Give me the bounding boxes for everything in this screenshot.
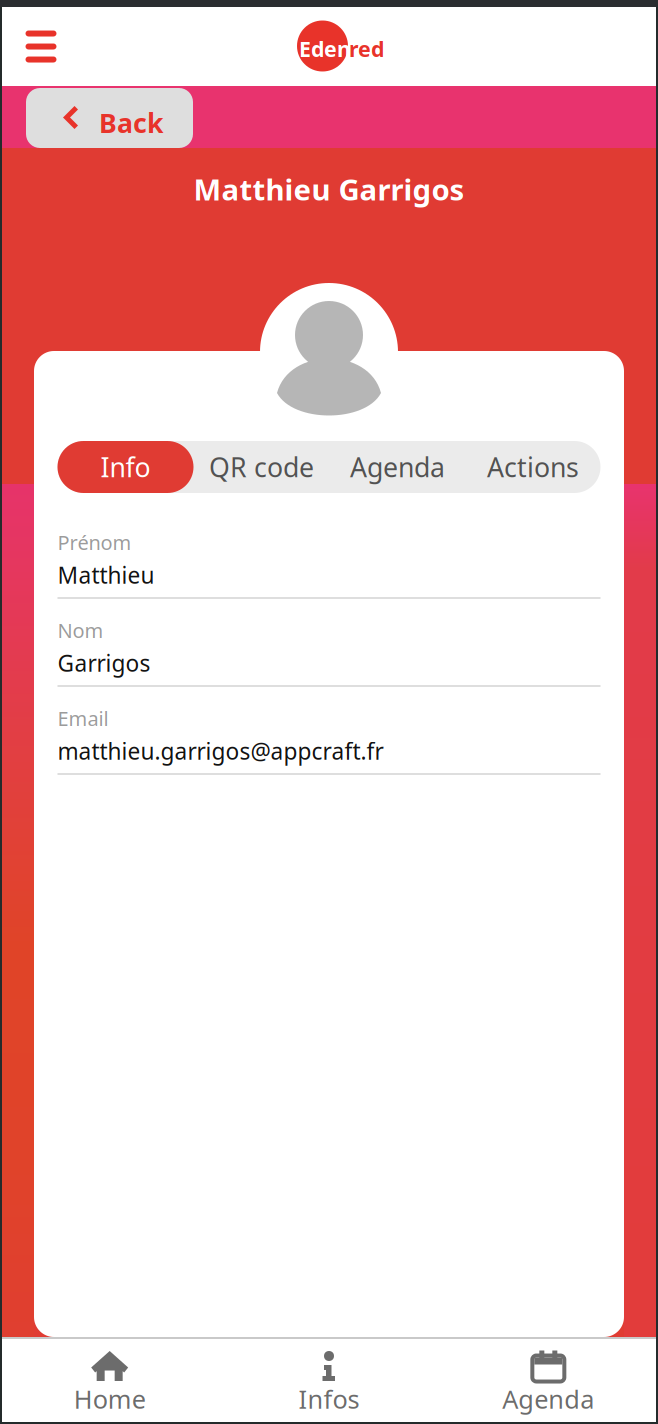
staticText: Matthieu Garrigos xyxy=(193,169,464,208)
staticText: Matthieu xyxy=(57,560,154,590)
button[interactable]: Back xyxy=(26,88,193,148)
staticText: Eden xyxy=(299,34,351,63)
button[interactable]: QR code xyxy=(193,441,329,493)
button[interactable]: Menu xyxy=(9,13,73,79)
staticText: Email xyxy=(57,705,108,732)
staticText: Garrigos xyxy=(57,648,150,678)
staticText: Agenda xyxy=(502,1382,594,1416)
button[interactable]: Agenda xyxy=(439,1339,658,1424)
staticText: Info xyxy=(100,449,150,485)
staticText: Actions xyxy=(487,449,579,485)
staticText: matthieu.garrigos@appcraft.fr xyxy=(57,736,383,766)
button[interactable]: Agenda xyxy=(329,441,465,493)
staticText: Nom xyxy=(57,617,103,644)
staticText: red xyxy=(349,34,384,63)
staticText: Prénom xyxy=(57,529,131,556)
button[interactable]: Home xyxy=(0,1339,219,1424)
button[interactable]: Infos xyxy=(219,1339,439,1424)
staticText: Back xyxy=(99,105,164,140)
staticText: Agenda xyxy=(350,449,445,485)
button[interactable]: Info xyxy=(57,441,193,493)
staticText: QR code xyxy=(209,449,314,485)
staticText: Home xyxy=(74,1382,146,1416)
button[interactable]: Actions xyxy=(465,441,600,493)
staticText: Infos xyxy=(298,1382,359,1416)
